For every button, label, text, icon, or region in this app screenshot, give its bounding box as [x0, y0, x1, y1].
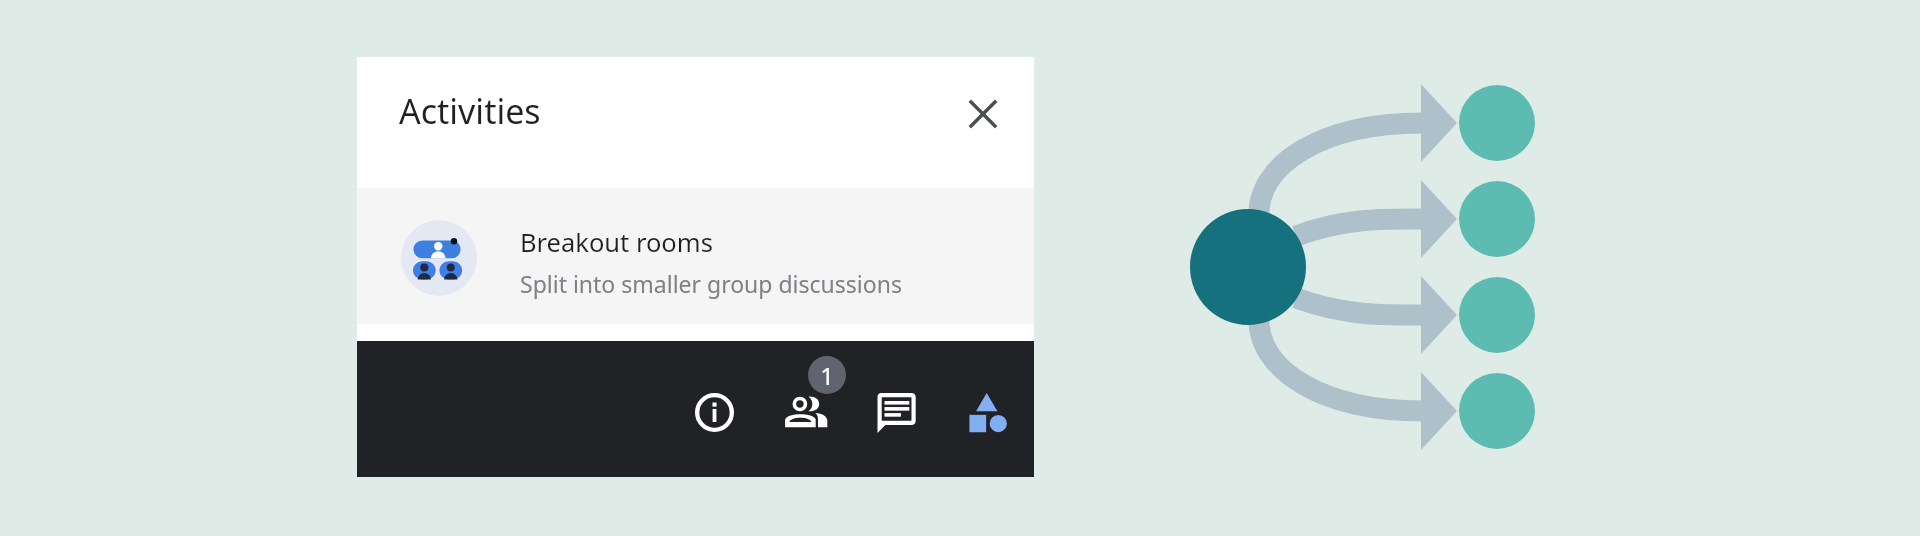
button[interactable]: People — [760, 341, 851, 477]
button[interactable]: Info — [669, 341, 760, 477]
button[interactable]: Close — [959, 90, 1007, 138]
button[interactable]: Activities — [942, 341, 1033, 477]
button[interactable]: Breakout rooms — [357, 188, 1034, 324]
staticText: Activities — [399, 88, 541, 134]
staticText: Breakout rooms — [520, 225, 713, 260]
staticText: Split into smaller group discussions — [520, 268, 902, 299]
button[interactable]: Chat — [851, 341, 942, 477]
staticText: 1 — [820, 359, 834, 392]
